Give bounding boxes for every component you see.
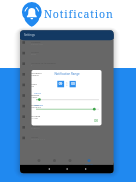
staticText: Settings bbox=[82, 163, 96, 166]
staticText: Sound bbox=[31, 50, 39, 53]
staticText: 12 MB bbox=[31, 117, 38, 120]
staticText: Contact bbox=[31, 124, 41, 127]
staticText: Home bbox=[32, 163, 46, 166]
staticText: Settings bbox=[24, 33, 35, 37]
staticText: Widgets bbox=[31, 40, 41, 43]
button[interactable]: Home bbox=[32, 158, 46, 166]
button[interactable]: OK bbox=[91, 118, 100, 124]
staticText: Storage bbox=[31, 114, 41, 117]
staticText: Notification Range bbox=[32, 72, 102, 76]
staticText: On bbox=[31, 85, 35, 88]
staticText: Alerts bbox=[48, 163, 62, 166]
staticText: Vibration bbox=[31, 71, 42, 74]
button[interactable]: Alerts bbox=[48, 158, 62, 166]
staticText: OK bbox=[94, 119, 99, 123]
staticText: Repeat bbox=[31, 93, 40, 96]
staticText: 09 bbox=[57, 82, 64, 86]
button[interactable]: Vibration bbox=[20, 70, 114, 81]
button[interactable]: Recents bbox=[82, 166, 90, 173]
staticText: Light bbox=[31, 82, 37, 85]
button[interactable]: Amount of Messages bbox=[20, 60, 114, 71]
button[interactable]: Home bbox=[63, 166, 71, 173]
staticText: About bbox=[31, 135, 39, 138]
staticText: Default bbox=[31, 74, 39, 77]
button[interactable]: Repeat bbox=[20, 92, 114, 103]
button[interactable]: Light bbox=[20, 81, 114, 92]
button[interactable]: About bbox=[20, 134, 114, 145]
button[interactable]: Contact bbox=[20, 123, 114, 134]
button[interactable]: Settings bbox=[82, 158, 96, 166]
button[interactable]: Sound bbox=[20, 49, 114, 60]
staticText: Privacy bbox=[31, 103, 40, 106]
button[interactable]: Privacy bbox=[20, 102, 114, 113]
staticText: Amount of Messages bbox=[31, 61, 56, 64]
button[interactable]: Widgets bbox=[20, 39, 114, 50]
staticText: Standard bbox=[31, 106, 41, 109]
button[interactable]: Apps bbox=[63, 158, 77, 166]
staticText: Apps bbox=[63, 163, 77, 166]
staticText: Notification bbox=[44, 7, 114, 21]
button[interactable]: Back bbox=[45, 166, 53, 173]
staticText: Minutes bbox=[34, 103, 44, 106]
staticText: Hours bbox=[34, 91, 41, 94]
staticText: 00 bbox=[70, 82, 76, 86]
staticText: Never bbox=[31, 96, 38, 99]
button[interactable]: Storage bbox=[20, 113, 114, 124]
